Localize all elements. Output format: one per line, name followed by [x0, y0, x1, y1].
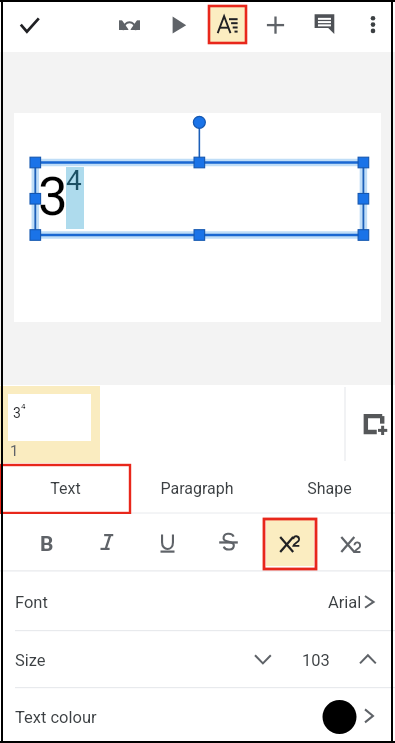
button[interactable]: Text	[0, 463, 131, 514]
staticText: 3	[13, 405, 21, 421]
button[interactable]: Insert	[257, 7, 293, 44]
staticText: Arial	[328, 593, 362, 612]
button[interactable]: Strikethrough	[203, 518, 255, 568]
button[interactable]: Bold	[21, 518, 73, 568]
button[interactable]: More options	[355, 7, 391, 44]
button[interactable]: Present	[157, 7, 193, 44]
button[interactable]: Done	[12, 7, 48, 44]
button[interactable]: Comments	[306, 7, 342, 44]
button[interactable]: Subscript	[324, 518, 376, 568]
button[interactable]: Underline	[142, 518, 194, 568]
button[interactable]	[0, 687, 395, 743]
button[interactable]: Increase size	[353, 644, 383, 674]
button[interactable]: Undo	[112, 7, 148, 44]
button[interactable]: 3	[0, 386, 100, 463]
staticText: 1	[10, 442, 19, 460]
button[interactable]: Italic	[81, 518, 133, 568]
button[interactable]	[0, 572, 395, 630]
button[interactable]: Paragraph	[131, 463, 263, 514]
staticText: Size	[15, 651, 46, 670]
button[interactable]: Superscript	[261, 518, 313, 568]
button[interactable]: Format	[209, 7, 246, 44]
staticText: 3	[38, 166, 68, 228]
button[interactable]: Shape	[263, 463, 395, 514]
button[interactable]: Decrease size	[250, 644, 280, 674]
staticText: Shape	[307, 479, 352, 498]
staticText: Text	[50, 479, 81, 498]
staticText: Font	[15, 593, 48, 612]
staticText: 4	[66, 164, 82, 197]
button[interactable]	[0, 630, 395, 687]
staticText: 103	[302, 651, 330, 670]
staticText: Text colour	[15, 708, 97, 727]
staticText: Paragraph	[160, 479, 234, 498]
staticText: 4	[21, 402, 26, 411]
staticText: B	[40, 532, 54, 557]
button[interactable]: Add slide	[359, 408, 392, 441]
